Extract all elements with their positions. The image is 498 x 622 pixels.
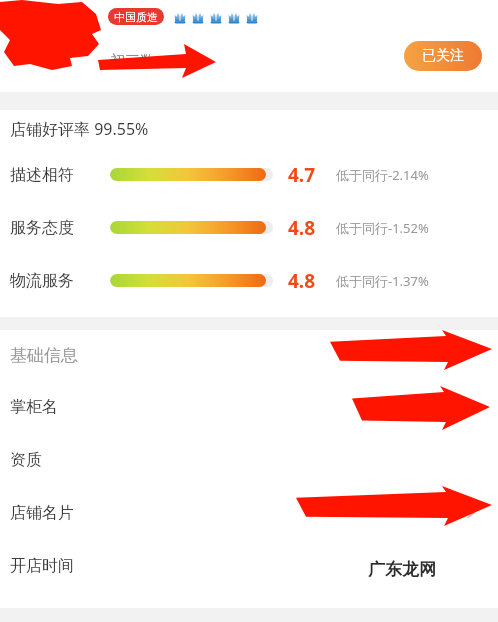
button[interactable]: 已关注: [404, 41, 482, 71]
button[interactable]: 中国质造: [108, 8, 164, 25]
staticText: 4.8: [288, 215, 316, 241]
staticText: 开店时间: [10, 556, 74, 576]
staticText: 低于同行-1.37%: [336, 272, 429, 290]
button[interactable]: 掌柜名: [0, 380, 498, 433]
staticText: 描述相符: [10, 165, 74, 185]
staticText: 低于同行-1.52%: [336, 219, 429, 237]
staticText: 物流服务: [10, 271, 74, 291]
button[interactable]: 描述相符: [0, 148, 498, 201]
staticText: 4.7: [288, 162, 316, 188]
button[interactable]: 开店时间: [0, 539, 498, 592]
staticText: 低于同行-2.14%: [336, 166, 429, 184]
staticText: 店铺好评率 99.55%: [10, 118, 149, 140]
staticText: 已关注: [422, 47, 464, 65]
staticText: 资质: [10, 450, 42, 470]
staticText: 服务态度: [10, 218, 74, 238]
staticText: 4.8: [288, 268, 316, 294]
staticText: 初三数: [110, 52, 155, 71]
staticText: 基础信息: [10, 345, 78, 366]
button[interactable]: 物流服务: [0, 254, 498, 307]
button[interactable]: 资质: [0, 433, 498, 486]
staticText: 店铺名片: [10, 503, 74, 523]
button[interactable]: 店铺名片: [0, 486, 498, 539]
button[interactable]: 服务态度: [0, 201, 498, 254]
staticText: 掌柜名: [10, 397, 58, 417]
staticText: 广东龙网: [368, 559, 436, 580]
staticText: 中国质造: [114, 10, 158, 24]
other: 查看店铺名片: [464, 506, 478, 520]
